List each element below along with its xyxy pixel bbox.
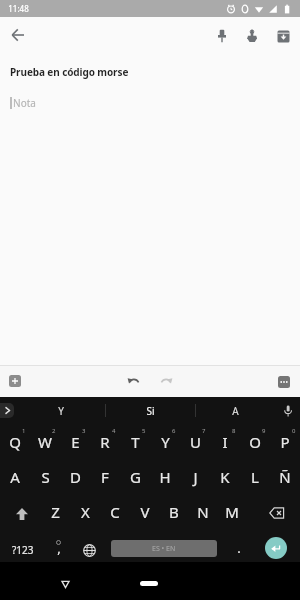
button[interactable]	[278, 376, 290, 388]
button[interactable]	[275, 397, 300, 424]
button[interactable]: V	[130, 494, 159, 529]
button[interactable]	[246, 494, 300, 529]
button[interactable]: X	[70, 494, 100, 529]
staticText: 5	[142, 427, 146, 435]
staticText: V	[140, 502, 150, 522]
staticText: Q	[9, 432, 21, 452]
staticText: 4	[112, 427, 116, 435]
staticText: T	[131, 432, 140, 452]
button[interactable]: W	[30, 424, 60, 459]
button[interactable]: ES • EN	[111, 540, 217, 557]
button[interactable]: R	[90, 424, 120, 459]
button[interactable]: .	[224, 529, 254, 562]
button[interactable]: U	[180, 424, 210, 459]
staticText: 6	[172, 427, 176, 435]
staticText: 0	[292, 427, 296, 435]
button[interactable]	[208, 22, 236, 50]
button[interactable]: A	[0, 459, 30, 494]
button[interactable]	[0, 494, 40, 529]
button[interactable]: Q	[0, 424, 30, 459]
staticText: M	[225, 502, 239, 522]
staticText: ,	[57, 539, 61, 557]
button[interactable]: S	[30, 459, 60, 494]
button[interactable]	[4, 21, 32, 49]
button[interactable]	[0, 403, 14, 418]
staticText: Prueba en código morse	[10, 65, 129, 79]
staticText: 7	[202, 427, 206, 435]
staticText: 9	[262, 427, 266, 435]
button[interactable]	[238, 22, 266, 50]
staticText: W	[38, 432, 52, 452]
staticText: A	[232, 404, 239, 418]
staticText: Nota	[13, 96, 36, 110]
button[interactable]: P	[270, 424, 300, 459]
staticText: D	[70, 467, 81, 487]
staticText: 2	[52, 427, 56, 435]
staticText: N	[197, 502, 209, 522]
staticText: 3	[82, 427, 86, 435]
staticText: Y	[58, 404, 64, 418]
staticText: S	[41, 467, 50, 487]
button[interactable]	[9, 375, 21, 387]
staticText: O	[249, 432, 261, 452]
staticText: 8	[232, 427, 236, 435]
button[interactable]: F	[90, 459, 120, 494]
staticText: A	[10, 467, 20, 487]
staticText: L	[251, 467, 259, 487]
staticText: J	[193, 467, 198, 487]
button[interactable]: T	[120, 424, 150, 459]
staticText: ES • EN	[152, 544, 176, 554]
button[interactable]	[52, 571, 78, 597]
button[interactable]: K	[210, 459, 240, 494]
staticText: I	[222, 432, 228, 452]
staticText: ?123	[12, 543, 34, 557]
button[interactable]: N	[188, 494, 217, 529]
staticText: G	[130, 467, 141, 487]
button[interactable]	[123, 370, 145, 392]
staticText: Si	[146, 404, 155, 418]
staticText: B	[169, 502, 179, 522]
button[interactable]: Si	[106, 397, 195, 424]
button[interactable]	[265, 537, 287, 559]
button[interactable]: Z	[40, 494, 70, 529]
staticText: K	[220, 467, 230, 487]
button[interactable]: H	[150, 459, 180, 494]
staticText: 1	[22, 427, 26, 435]
staticText: R	[100, 432, 110, 452]
button[interactable]: E	[60, 424, 90, 459]
button[interactable]: J	[180, 459, 210, 494]
button[interactable]: D	[60, 459, 90, 494]
button[interactable]: Y	[150, 424, 180, 459]
staticText: 11:48	[8, 3, 29, 14]
button[interactable]: G	[120, 459, 150, 494]
button[interactable]: ?123	[3, 529, 43, 562]
button[interactable]: L	[240, 459, 270, 494]
button[interactable]: O	[240, 424, 270, 459]
staticText: Y	[161, 432, 170, 452]
button[interactable]: C	[100, 494, 130, 529]
button[interactable]: B	[159, 494, 188, 529]
button[interactable]: M	[217, 494, 246, 529]
staticText: U	[190, 432, 201, 452]
staticText: .	[237, 539, 241, 557]
button[interactable]: A	[196, 397, 275, 424]
staticText: E	[71, 432, 80, 452]
staticText: Z	[51, 502, 60, 522]
button[interactable]	[269, 22, 297, 50]
button[interactable]: Y	[16, 397, 105, 424]
staticText: X	[81, 502, 90, 522]
button[interactable]: I	[210, 424, 240, 459]
button[interactable]: ,	[44, 529, 73, 562]
button[interactable]	[140, 581, 158, 586]
staticText: F	[101, 467, 109, 487]
button[interactable]: Ñ	[270, 459, 300, 494]
button[interactable]	[74, 529, 104, 562]
staticText: C	[110, 502, 120, 522]
button[interactable]	[155, 370, 177, 392]
staticText: P	[280, 432, 290, 452]
staticText: H	[159, 467, 171, 487]
staticText: Ñ	[279, 467, 291, 487]
